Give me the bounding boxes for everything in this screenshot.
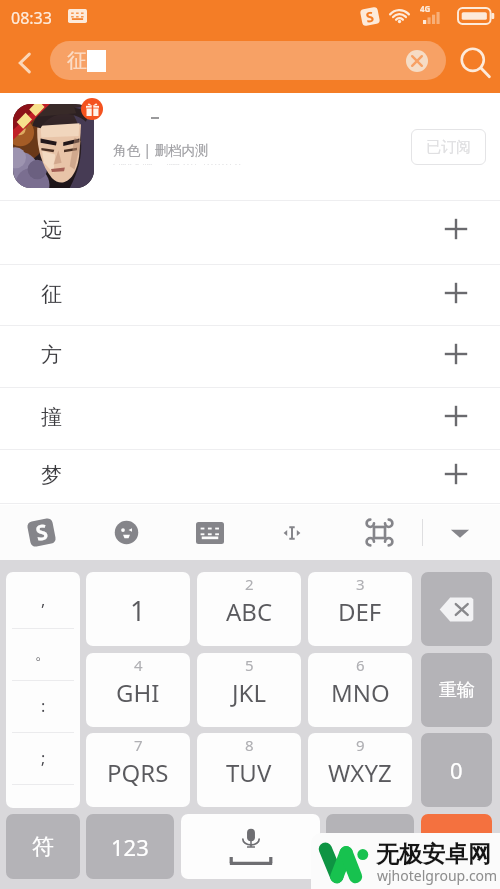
button[interactable]: Add 撞 <box>442 402 470 430</box>
staticText: 征 <box>41 281 62 307</box>
button[interactable]: Search <box>450 33 500 93</box>
staticText: · ···· ·· ·· ····· ······· · · · · · · ·… <box>113 160 241 170</box>
staticText: , <box>41 589 46 611</box>
button[interactable]: Hide keyboard <box>434 505 486 560</box>
button[interactable]: Add 征 <box>442 279 470 307</box>
staticText: : <box>41 695 46 717</box>
button[interactable]: Move cursor <box>266 505 318 560</box>
button[interactable]: Emoji <box>100 505 152 560</box>
staticText: 0 <box>450 755 463 785</box>
staticText: 7 <box>134 735 143 755</box>
staticText: wjhotelgroup.com <box>377 866 498 885</box>
staticText: PQRS <box>107 756 169 789</box>
staticText: 已订阅 <box>426 138 471 157</box>
button[interactable]: 角色 | 删档内测 <box>0 93 500 200</box>
button[interactable]: Add 方 <box>442 340 470 368</box>
staticText: 符 <box>32 833 54 861</box>
staticText: 重输 <box>439 679 475 702</box>
button[interactable]: Space / voice input <box>181 814 320 879</box>
staticText: TUV <box>226 756 272 789</box>
staticText: 无极安卓网 <box>376 840 491 869</box>
staticText: 8 <box>245 735 254 755</box>
staticText: JKL <box>232 676 266 709</box>
button[interactable]: 3 <box>308 572 412 646</box>
button[interactable]: 123 <box>86 814 174 879</box>
button[interactable]: 7 <box>86 733 190 807</box>
button[interactable]: 。 <box>6 628 80 680</box>
button[interactable]: 4 <box>86 653 190 727</box>
staticText: 1 <box>130 592 146 629</box>
staticText: 撞 <box>41 404 62 430</box>
button[interactable]: : <box>6 680 80 732</box>
button[interactable]: Enter <box>421 814 492 879</box>
staticText: 。 <box>35 644 51 664</box>
button[interactable]: Sogou input <box>15 505 67 560</box>
staticText: 3 <box>356 574 365 594</box>
staticText: 角色 | 删档内测 <box>113 141 209 159</box>
staticText: 征 <box>67 48 87 73</box>
button[interactable]: 0 <box>421 733 492 807</box>
button[interactable]: 重输 <box>421 653 492 727</box>
button[interactable]: Keyboard layout <box>184 505 236 560</box>
button[interactable]: Add 梦 <box>442 460 470 488</box>
button[interactable]: , <box>6 572 80 628</box>
button[interactable]: 1 <box>86 572 190 646</box>
staticText: 5 <box>245 655 254 675</box>
button[interactable]: Backspace <box>421 572 492 646</box>
staticText: S <box>33 517 51 548</box>
staticText: 2 <box>245 574 254 594</box>
button[interactable]: 征 <box>0 265 500 326</box>
staticText: 梦 <box>41 462 62 488</box>
staticText: DEF <box>338 595 382 628</box>
button[interactable]: 6 <box>308 653 412 727</box>
button[interactable]: 符 <box>6 814 80 879</box>
staticText: 方 <box>41 342 62 368</box>
button[interactable]: 已订阅 <box>411 129 486 165</box>
button[interactable]: 远 <box>0 201 500 265</box>
button[interactable]: 梦 <box>0 450 500 504</box>
staticText: ; <box>41 747 46 769</box>
staticText: 远 <box>41 217 62 243</box>
button[interactable]: Clear <box>406 50 428 72</box>
staticText: GHI <box>116 676 160 709</box>
button[interactable]: More <box>326 814 414 879</box>
staticText: 6 <box>356 655 365 675</box>
button[interactable]: 8 <box>197 733 301 807</box>
button[interactable]: 方 <box>0 326 500 388</box>
button[interactable]: 9 <box>308 733 412 807</box>
button[interactable]: 5 <box>197 653 301 727</box>
staticText: 123 <box>111 832 149 862</box>
button[interactable]: 征 <box>50 41 446 80</box>
staticText: 4 <box>134 655 143 675</box>
button[interactable]: Back <box>2 33 48 93</box>
staticText: 9 <box>356 735 365 755</box>
staticText: 4G <box>420 3 431 14</box>
button[interactable]: ; <box>6 732 80 784</box>
button[interactable]: 2 <box>197 572 301 646</box>
staticText: WXYZ <box>328 756 392 789</box>
button[interactable]: 撞 <box>0 388 500 450</box>
button[interactable]: Shortcuts <box>353 505 405 560</box>
staticText: MNO <box>331 676 390 709</box>
staticText: 08:33 <box>11 7 52 29</box>
staticText: S <box>364 6 376 27</box>
button[interactable]: Add 远 <box>442 215 470 243</box>
staticText: ABC <box>226 595 273 628</box>
